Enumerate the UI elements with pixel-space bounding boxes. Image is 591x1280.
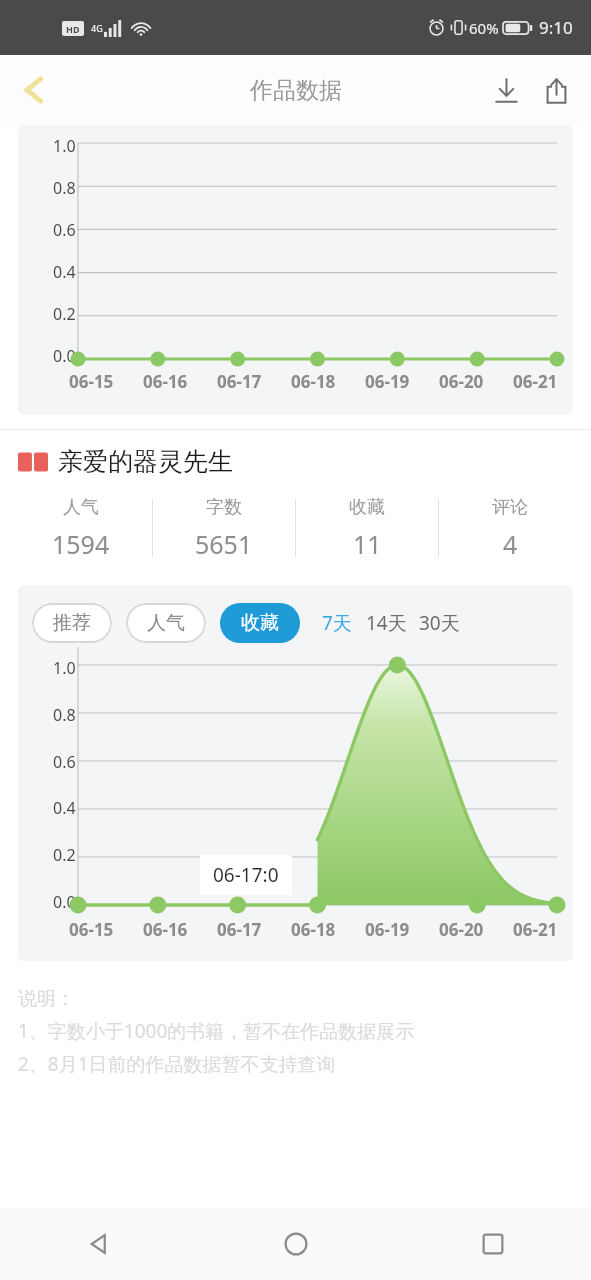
button[interactable]: Back [6,62,62,118]
staticText: 06-16 [143,918,188,941]
staticText: 06-17:0 [213,862,279,888]
staticText: 5651 [195,527,253,561]
staticText: 06-19 [365,918,410,941]
staticText: 0.0 [53,345,76,367]
staticText: 4G [91,22,103,34]
staticText: 评论 [492,496,528,519]
staticText: 1.0 [53,135,76,157]
button[interactable]: 收藏 [220,603,300,643]
button[interactable]: 收藏 [296,485,438,571]
staticText: 06-21 [513,370,558,393]
staticText: 收藏 [241,611,279,635]
button[interactable]: 14天 [366,610,407,636]
staticText: 0.8 [53,177,76,199]
staticText: 1、字数小于1000的书籍，暂不在作品数据展示 [18,1018,415,1044]
staticText: 06-18 [291,370,336,393]
staticText: 06-20 [439,918,484,941]
staticText: 9:10 [539,16,573,39]
button[interactable]: 人气 [126,603,206,643]
staticText: 06-16 [143,370,188,393]
staticText: 0.6 [53,751,76,773]
staticText: 06-18 [291,918,336,941]
staticText: 06-19 [365,370,410,393]
staticText: 4 [503,527,518,561]
staticText: 06-15 [69,370,114,393]
button[interactable]: 亲爱的器灵先生 [18,446,573,477]
button[interactable]: Back [0,1208,197,1280]
button[interactable]: 推荐 [32,603,112,643]
staticText: 0.2 [53,303,76,325]
staticText: 0.0 [53,891,76,913]
staticText: 0.6 [53,219,76,241]
staticText: 推荐 [53,611,91,635]
staticText: 06-15 [69,918,114,941]
button[interactable]: Download [481,65,531,115]
staticText: 2、8月1日前的作品数据暂不支持查询 [18,1051,336,1077]
button[interactable]: Recent apps [394,1208,591,1280]
staticText: 收藏 [349,496,385,519]
button[interactable]: Home [197,1208,394,1280]
button[interactable]: 7天 [322,610,352,636]
button[interactable]: 30天 [419,610,460,636]
staticText: 06-20 [439,370,484,393]
staticText: 0.2 [53,844,76,866]
staticText: 亲爱的器灵先生 [58,446,233,477]
staticText: 人气 [147,611,185,635]
staticText: 06-17 [217,370,262,393]
staticText: HD [66,23,80,35]
staticText: 1.0 [53,657,76,679]
staticText: 06-21 [513,918,558,941]
staticText: 0.4 [53,261,76,283]
staticText: 0.4 [53,797,76,819]
button[interactable]: Share [531,65,581,115]
staticText: 作品数据 [250,76,342,105]
button[interactable]: 字数 [153,485,295,571]
staticText: 1594 [52,527,110,561]
staticText: 人气 [63,496,99,519]
button[interactable]: 人气 [10,485,152,571]
staticText: 0.8 [53,704,76,726]
staticText: 字数 [206,496,242,519]
staticText: 说明： [18,987,75,1011]
button[interactable]: 评论 [439,485,581,571]
staticText: 06-17 [217,918,262,941]
staticText: 11 [353,527,382,561]
staticText: 60% [469,18,499,38]
